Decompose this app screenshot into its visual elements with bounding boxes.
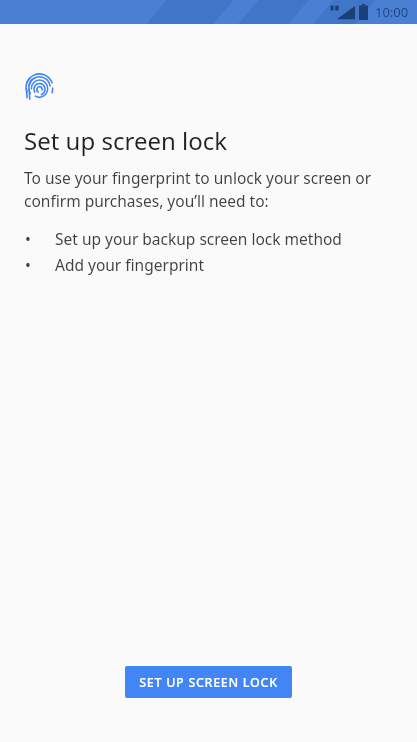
staticText: Set up your backup screen lock method — [55, 228, 342, 249]
staticText: 10:00 — [375, 3, 409, 21]
staticText: To use your fingerprint to unlock your s… — [24, 167, 391, 212]
staticText: SET UP SCREEN LOCK — [139, 674, 278, 691]
staticText: • — [25, 254, 31, 275]
staticText: Add your fingerprint — [55, 254, 204, 275]
other: Fingerprint — [25, 73, 54, 102]
staticText: • — [25, 228, 31, 249]
button[interactable]: SET UP SCREEN LOCK — [125, 666, 292, 698]
staticText: Set up screen lock — [24, 124, 228, 157]
